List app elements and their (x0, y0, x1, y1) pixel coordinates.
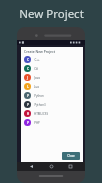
button[interactable]: C (21, 64, 83, 73)
staticText: Python (34, 94, 44, 98)
staticText: Java (34, 76, 40, 80)
staticText: J (27, 76, 28, 80)
staticText: C# (34, 67, 38, 71)
button[interactable]: H (21, 109, 83, 118)
staticText: H (27, 112, 29, 116)
button[interactable]: P (21, 91, 83, 100)
staticText: P (27, 94, 29, 98)
button[interactable]: Close (62, 152, 80, 160)
staticText: Lua (34, 85, 39, 89)
staticText: New Project (19, 6, 84, 22)
button[interactable]: P (21, 100, 83, 109)
button[interactable]: P (21, 118, 83, 127)
staticText: L (27, 85, 29, 89)
staticText: PHP (34, 121, 40, 125)
button[interactable]: L (21, 82, 83, 91)
button[interactable]: J (21, 73, 83, 82)
button[interactable]: C (21, 55, 83, 64)
staticText: P (27, 103, 29, 107)
staticText: Create New Project (24, 49, 55, 54)
staticText: HTML/CSS (34, 112, 48, 116)
button[interactable]: Recents (66, 162, 75, 171)
staticText: Close (67, 154, 75, 158)
staticText: Python3 (34, 103, 46, 107)
staticText: C (27, 58, 29, 62)
staticText: P (27, 121, 29, 125)
staticText: C++ (34, 58, 40, 62)
button[interactable]: Home (47, 162, 56, 171)
staticText: C (27, 67, 29, 71)
button[interactable]: Back (27, 162, 36, 171)
